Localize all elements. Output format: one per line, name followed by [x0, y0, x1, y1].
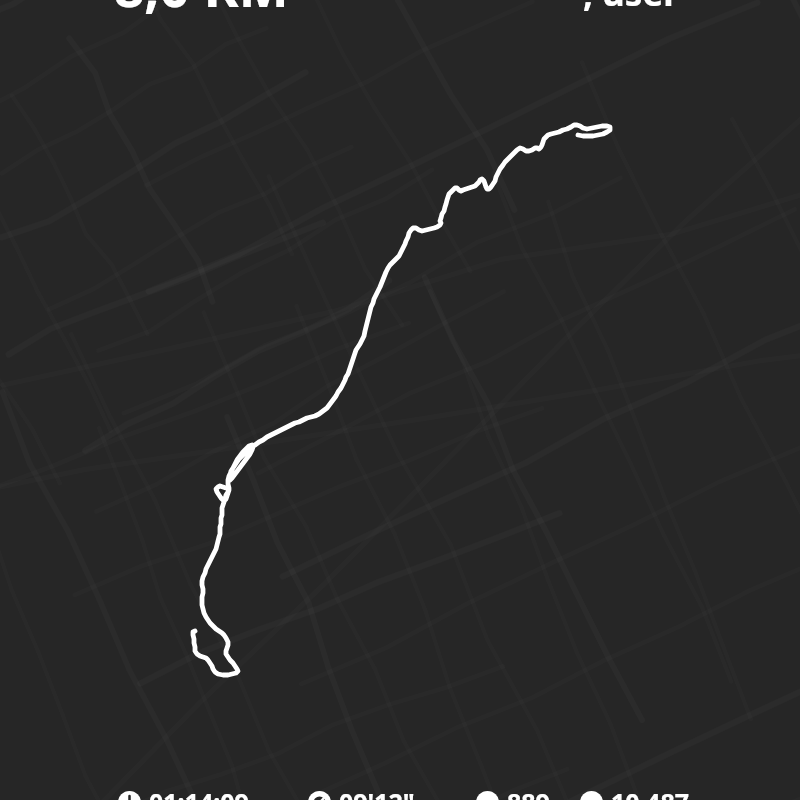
- button[interactable]: Average pace: [308, 785, 415, 800]
- other: Steps: [580, 791, 603, 800]
- button[interactable]: Calories: [476, 785, 550, 800]
- staticText: 09'12": [339, 785, 415, 800]
- button[interactable]: Duration: [118, 785, 249, 800]
- staticText: 10 487: [611, 785, 690, 800]
- other: Duration: [118, 791, 141, 800]
- staticText: 8,0 KM: [114, 0, 289, 22]
- button[interactable]: Steps: [580, 785, 690, 800]
- staticText: , user: [583, 0, 679, 17]
- staticText: 889: [507, 785, 550, 800]
- other: Average pace: [308, 791, 331, 800]
- staticText: 01:14:09: [149, 785, 249, 800]
- other: Calories: [476, 791, 499, 800]
